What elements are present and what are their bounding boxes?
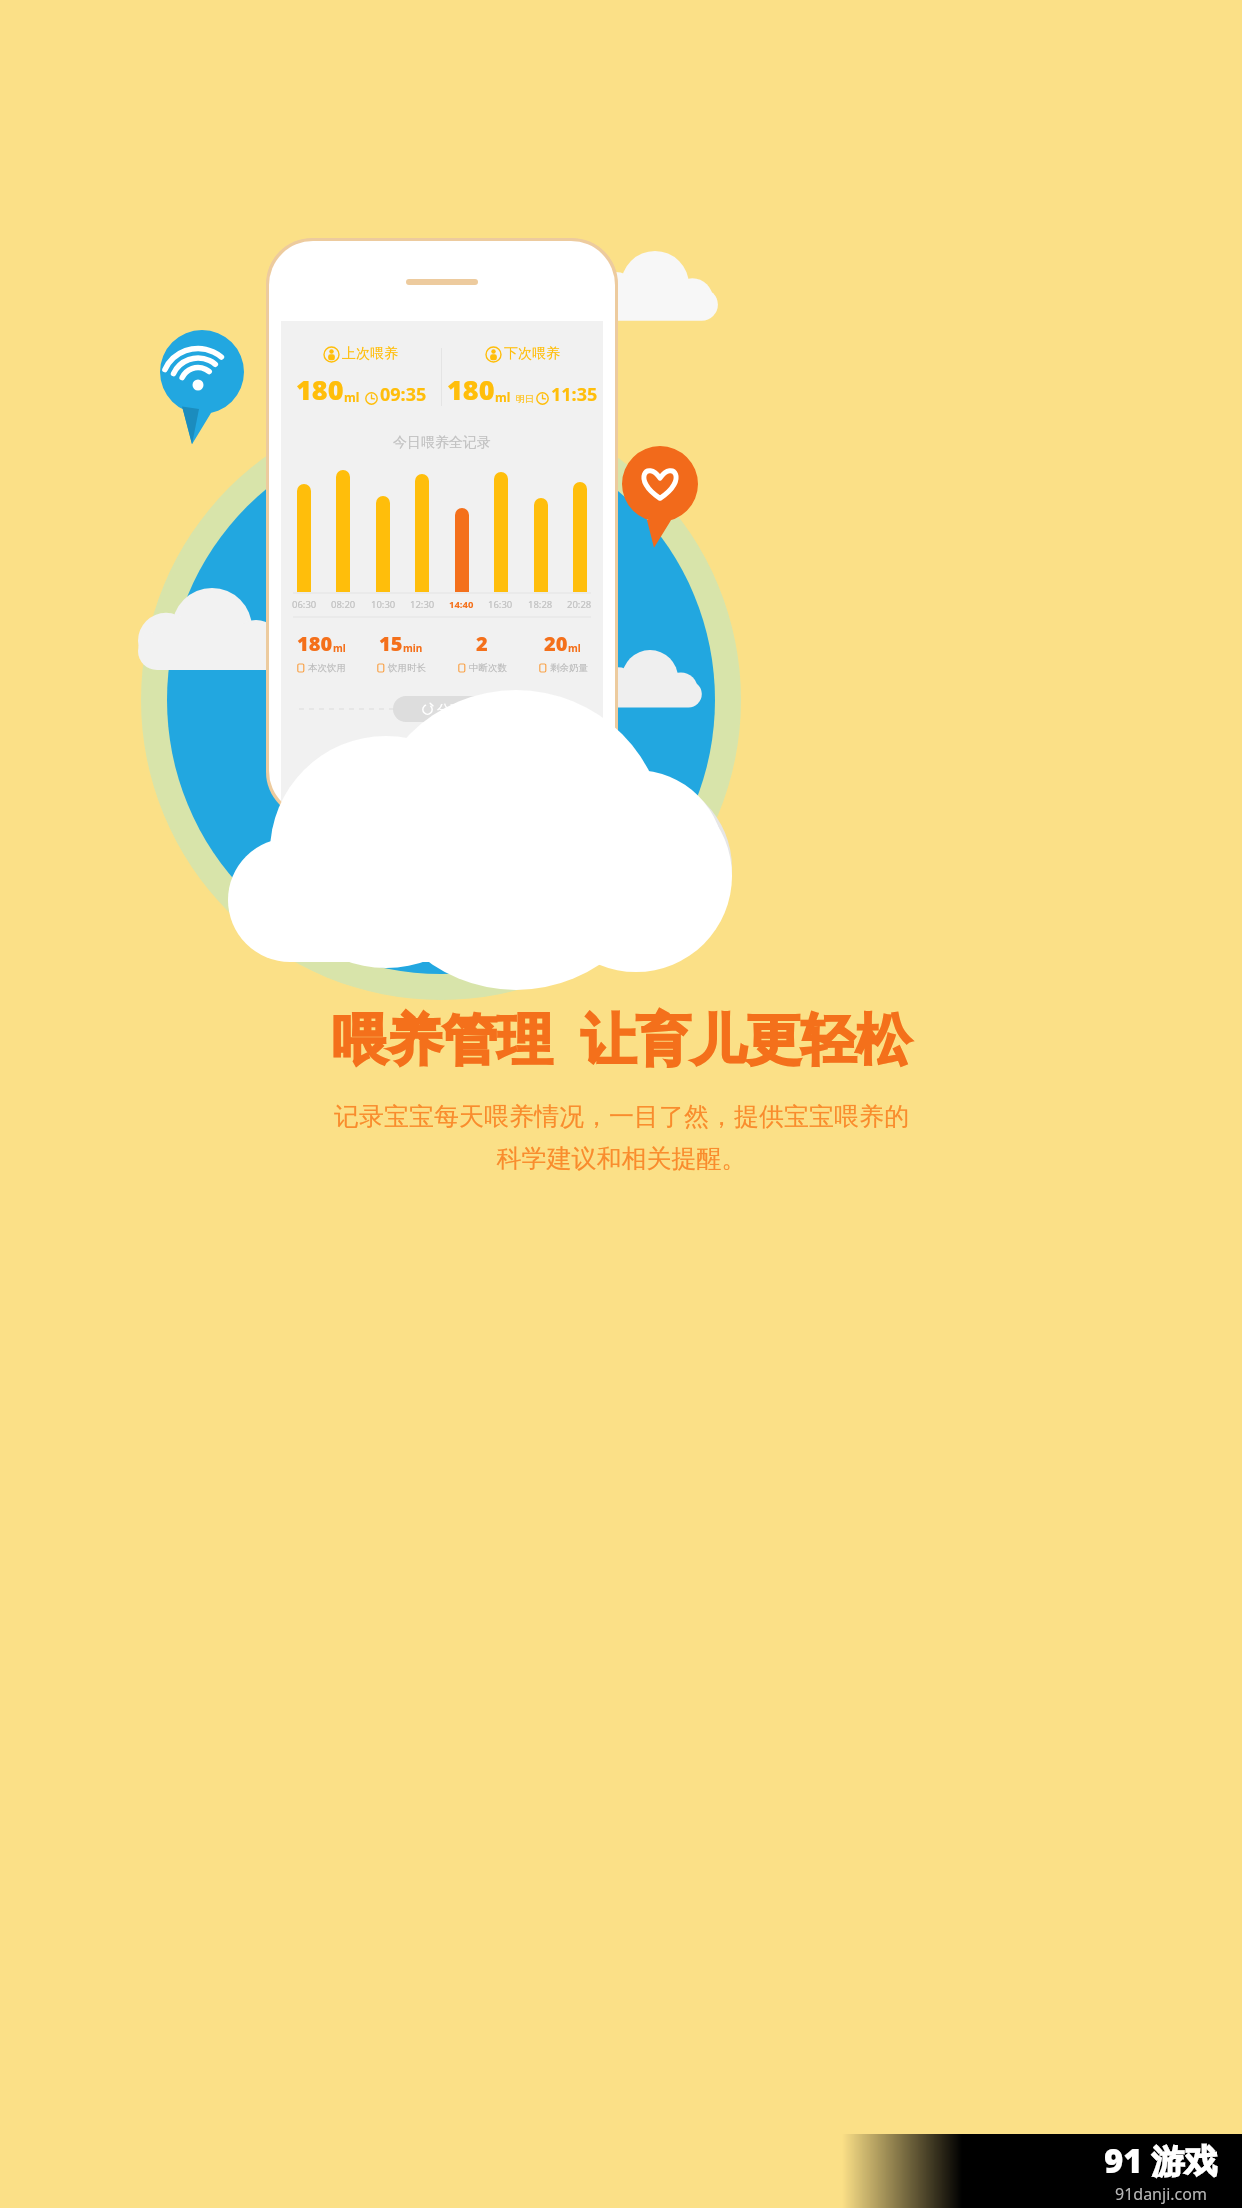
staticText: 91danji.com — [1115, 2183, 1207, 2205]
staticText: 11:35 — [551, 382, 598, 407]
staticText: 10:30 — [371, 598, 396, 611]
staticText: 剩余奶量 — [550, 662, 588, 674]
staticText: 09:35 — [380, 382, 427, 407]
staticText: 分享 — [437, 701, 463, 717]
staticText: 明日 — [516, 393, 534, 404]
staticText: 14:40 — [449, 598, 474, 611]
staticText: 饮用时长 — [388, 662, 426, 674]
staticText: 16:30 — [488, 598, 513, 611]
staticText: 18:28 — [528, 598, 553, 611]
staticText: 12:30 — [410, 598, 435, 611]
staticText: 08:20 — [331, 598, 356, 611]
staticText: 今日喂养全记录 — [281, 434, 603, 452]
staticText: 15 — [379, 630, 403, 657]
staticText: 180 — [296, 371, 344, 408]
staticText: 记录宝宝每天喂养情况，一目了然，提供宝宝喂养的 科学建议和相关提醒。 — [334, 1101, 909, 1175]
staticText: ml — [344, 389, 360, 405]
staticText: 本次饮用 — [308, 662, 346, 674]
staticText: ml — [333, 641, 346, 655]
staticText: 中断次数 — [469, 662, 507, 674]
staticText: 180 — [297, 630, 333, 657]
staticText: 上次喂养 — [342, 345, 398, 363]
other: Share — [421, 703, 434, 716]
staticText: 20 — [544, 630, 568, 657]
staticText: ml — [495, 389, 511, 405]
staticText: 20:28 — [567, 598, 592, 611]
staticText: 180 — [447, 371, 495, 408]
staticText: min — [403, 641, 423, 655]
staticText: 06:30 — [292, 598, 317, 611]
button[interactable]: Share — [393, 696, 491, 722]
staticText: 下次喂养 — [504, 345, 560, 363]
staticText: 2 — [476, 630, 488, 657]
staticText: ml — [568, 641, 581, 655]
staticText: 91 游戏 — [1104, 2138, 1218, 2183]
staticText: 喂养管理 让育儿更轻松 — [332, 1000, 911, 1075]
